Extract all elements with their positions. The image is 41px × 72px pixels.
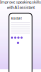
staticText: Improve speaking skills <box>0 0 41 4</box>
staticText: with AI assistant <box>6 4 34 10</box>
staticText: Assistant <box>11 17 22 20</box>
